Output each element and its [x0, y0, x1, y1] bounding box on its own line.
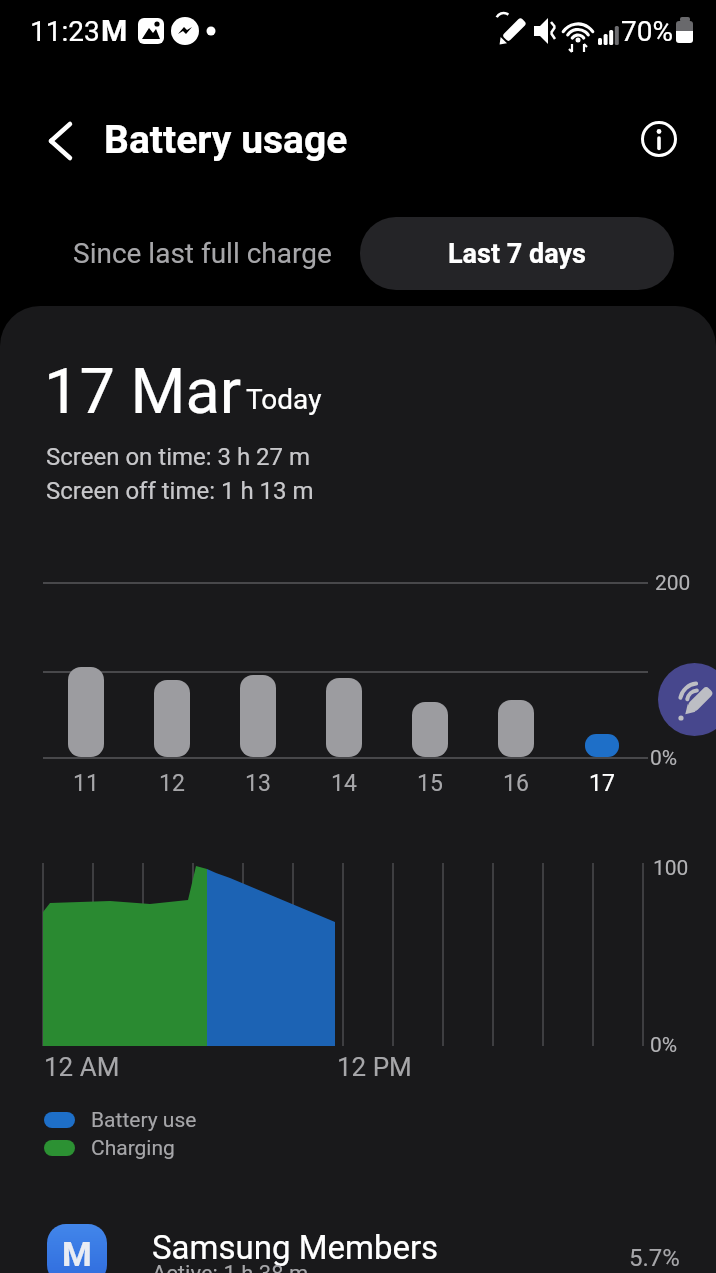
staticText: Battery usage — [104, 117, 348, 163]
staticText: Last 7 days — [448, 238, 587, 270]
staticText: Today — [246, 383, 322, 416]
staticText: 5.7% — [629, 1244, 680, 1272]
button[interactable] — [36, 112, 92, 168]
staticText: 0% — [650, 1033, 678, 1058]
staticText: 12 PM — [337, 1052, 412, 1080]
button[interactable]: Since last full charge — [50, 217, 355, 290]
staticText: 12 AM — [44, 1052, 120, 1080]
staticText: M — [62, 1234, 92, 1273]
staticText: 100 — [653, 856, 689, 881]
button[interactable]: M — [0, 1200, 716, 1273]
staticText: 200 — [655, 571, 691, 596]
staticText: 70% — [621, 15, 673, 48]
staticText: 11:23 — [30, 15, 100, 48]
staticText: Battery use — [91, 1108, 197, 1132]
staticText: M — [101, 13, 128, 48]
button[interactable]: Last 7 days — [360, 217, 674, 290]
staticText: Screen on time: 3 h 27 m — [46, 443, 311, 467]
staticText: 16 — [503, 770, 529, 797]
button[interactable] — [658, 663, 716, 736]
staticText: Charging — [91, 1136, 175, 1160]
staticText: 14 — [331, 770, 357, 797]
staticText: Samsung Members — [152, 1228, 439, 1266]
staticText: 12 — [159, 770, 185, 797]
button[interactable] — [631, 111, 687, 167]
staticText: Screen off time: 1 h 13 m — [46, 477, 314, 501]
staticText: 15 — [417, 770, 443, 797]
staticText: Active: 1 h 38 m — [152, 1261, 309, 1273]
staticText: 13 — [245, 770, 271, 797]
staticText: 0% — [650, 746, 678, 771]
staticText: Since last full charge — [73, 237, 332, 270]
staticText: 17 — [589, 770, 615, 797]
staticText: 11 — [73, 770, 99, 797]
staticText: 17 Mar — [44, 355, 242, 425]
